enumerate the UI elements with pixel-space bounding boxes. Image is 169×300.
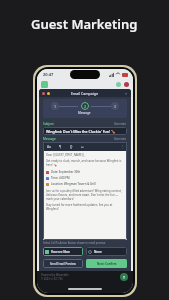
button[interactable]: Wingfest: Don't Miss the Cluckin' Fun! 🍗 [43,127,127,135]
staticText: Send Email Preview [50,262,76,266]
staticText: Subject [43,122,54,126]
staticText: 2 [84,104,87,109]
button[interactable]: × [125,91,128,96]
button[interactable]: Insert link [79,144,85,150]
staticText: Guest Marketing [31,15,138,33]
staticText: Get ready to cluck, munch, and savor bec… [46,159,124,167]
button[interactable]: Send Email Preview [43,259,83,268]
button[interactable]: Generate [114,122,127,126]
button[interactable]: Help [120,273,128,281]
staticText: Message [43,137,56,141]
staticText: ↔ [81,145,84,149]
button[interactable]: 1 [51,102,59,110]
button[interactable]: 3 [111,102,119,110]
staticText: Reserve Now [51,250,70,254]
staticText: Date: September 30th [51,170,81,174]
staticText: Dear {{GUEST_FIRST_NAME}}, [46,153,85,157]
staticText: Location: Wingman Tavern & Grill [51,182,96,186]
button[interactable]: App menu [41,81,48,88]
button[interactable]: Paragraph [57,144,63,150]
button[interactable]: Text style [46,144,52,150]
staticText: Join us for a poultry-filled adventure! … [46,189,124,201]
staticText: 3 [114,104,117,109]
button[interactable]: ⋮ [120,144,124,149]
button[interactable]: 2 [81,102,89,110]
button[interactable]: Profile [116,82,121,87]
button[interactable]: Next: Confirm [86,259,127,268]
staticText: 1 [54,104,57,109]
staticText: Next: Confirm [97,262,117,266]
staticText: {} [70,145,73,149]
staticText: ¶ [59,145,62,149]
button[interactable]: Variables [68,144,74,150]
staticText: Select Call To Action Button shown in em… [43,241,106,245]
button[interactable]: Generate [114,137,127,141]
staticText: 20:47 [43,72,54,77]
staticText: Email Campaign [71,91,99,96]
staticText: Aa [47,145,51,149]
staticText: Wingfest: Don't Miss the Cluckin' Fun! 🍗 [46,129,116,134]
staticText: None [94,250,102,254]
staticText: Message [78,111,91,115]
staticText: Powered by Wavetable [41,273,69,277]
staticText: Stay tuned for more feathered updates. S… [46,203,124,211]
staticText: © 2023 v1.8.7.736 [41,277,63,281]
staticText: Time: 4:00 PM [51,176,70,180]
button[interactable]: Notifications [124,82,129,87]
button[interactable]: None [86,247,127,256]
button[interactable]: Reserve Now [43,247,83,256]
staticText: ? [123,275,125,280]
